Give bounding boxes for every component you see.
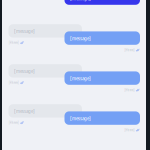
staticText: [message] (14, 27, 35, 35)
staticText: [Hh:mm] (9, 41, 19, 44)
staticText: [Hh:mm] (124, 88, 134, 92)
staticText: [message] (70, 74, 91, 82)
staticText: [Hh:mm] (124, 128, 134, 132)
staticText: [message] (70, 0, 91, 2)
staticText: [message] (14, 107, 35, 115)
staticText: [message] (70, 114, 91, 122)
staticText: [Hh:mm] (9, 81, 19, 84)
staticText: [message] (70, 34, 91, 42)
staticText: [Hh:mm] (9, 121, 19, 124)
staticText: [message] (14, 67, 35, 75)
staticText: [Hh:mm] (124, 48, 134, 52)
